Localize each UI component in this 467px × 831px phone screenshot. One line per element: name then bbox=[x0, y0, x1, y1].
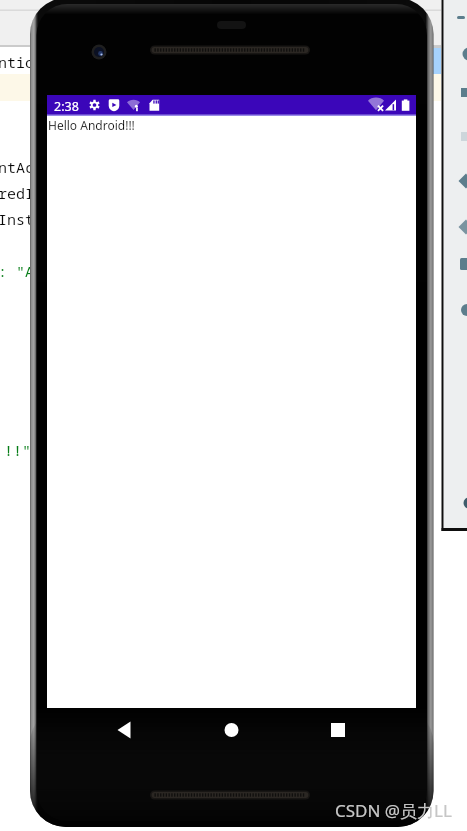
button[interactable]: Home bbox=[199, 712, 263, 748]
staticText: !!" bbox=[4, 440, 32, 460]
staticText: CSDN @员力LL bbox=[335, 799, 452, 822]
staticText: Inst bbox=[0, 209, 35, 229]
button[interactable]: Recent apps bbox=[306, 712, 370, 748]
staticText: 2:38 bbox=[54, 98, 79, 115]
staticText: : "A bbox=[0, 261, 35, 281]
staticText: redI bbox=[0, 183, 35, 203]
staticText: ntAc bbox=[0, 157, 35, 177]
staticText: Hello Android!!! bbox=[48, 117, 135, 133]
button[interactable]: Back bbox=[100, 712, 164, 748]
staticText: ntio bbox=[0, 52, 35, 72]
